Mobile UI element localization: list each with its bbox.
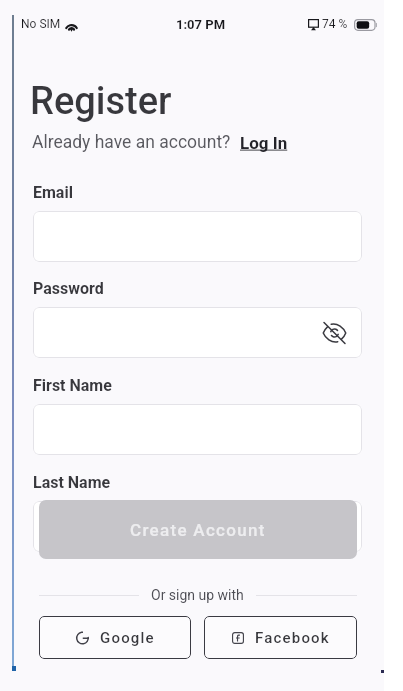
button[interactable] — [33, 211, 362, 262]
staticText: Google — [100, 629, 155, 647]
staticText: 1:07 PM — [176, 17, 226, 32]
button[interactable]: Facebook — [204, 616, 357, 659]
button[interactable]: Show password — [317, 313, 352, 353]
staticText: Last Name — [33, 473, 111, 492]
staticText: Log In — [240, 133, 288, 153]
staticText: No SIM — [21, 17, 61, 31]
button[interactable]: Log In — [240, 133, 288, 153]
staticText: Password — [33, 279, 104, 298]
staticText: Already have an account? — [32, 132, 240, 153]
staticText: 74 % — [322, 17, 348, 31]
staticText: Facebook — [255, 629, 330, 647]
staticText: Register — [30, 79, 172, 124]
staticText: Or sign up with — [151, 587, 244, 603]
staticText: Email — [33, 183, 73, 202]
button[interactable] — [33, 404, 362, 455]
button[interactable]: Google — [39, 616, 191, 659]
button[interactable]: Show password — [33, 307, 362, 358]
button[interactable] — [33, 501, 362, 552]
button[interactable]: Create Account — [39, 500, 357, 559]
staticText: Create Account — [130, 520, 266, 540]
staticText: First Name — [33, 376, 112, 395]
